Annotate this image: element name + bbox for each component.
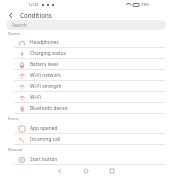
button[interactable]: App opened (0, 123, 172, 134)
button[interactable]: Back (47, 165, 73, 176)
staticText: Start button (30, 156, 58, 163)
staticText: Device (8, 31, 21, 36)
button[interactable]: Home (73, 165, 99, 176)
staticText: Incoming call (30, 136, 61, 143)
staticText: Charging status (30, 50, 66, 57)
staticText: Wi-Fi (30, 94, 41, 101)
button[interactable]: Wi-Fi (0, 92, 172, 103)
button[interactable]: Navigate up (0, 10, 20, 20)
staticText: Event (8, 116, 19, 121)
staticText: 12:34 (28, 2, 39, 8)
staticText: Search (12, 22, 27, 28)
button[interactable]: Headphones (0, 37, 172, 48)
button[interactable]: Bluetooth device (0, 103, 172, 114)
button[interactable]: Wi-Fi network (0, 70, 172, 81)
staticText: Wi-Fi network (30, 72, 61, 79)
staticText: Manual (8, 147, 23, 152)
button[interactable]: Incoming call (0, 134, 172, 145)
staticText: Bluetooth device (30, 105, 68, 112)
button[interactable]: Search (6, 20, 166, 30)
staticText: Wi-Fi strength (30, 83, 62, 90)
staticText: App opened (30, 125, 58, 132)
staticText: Headphones (30, 39, 59, 46)
button[interactable]: Charging status (0, 48, 172, 59)
staticText: 78% (141, 2, 150, 8)
button[interactable]: Start button (0, 154, 172, 165)
button[interactable]: Wi-Fi strength (0, 81, 172, 92)
staticText: Battery level (30, 61, 58, 68)
button[interactable]: Battery level (0, 59, 172, 70)
staticText: Conditions (20, 11, 52, 19)
button[interactable]: Recent apps (99, 165, 125, 176)
